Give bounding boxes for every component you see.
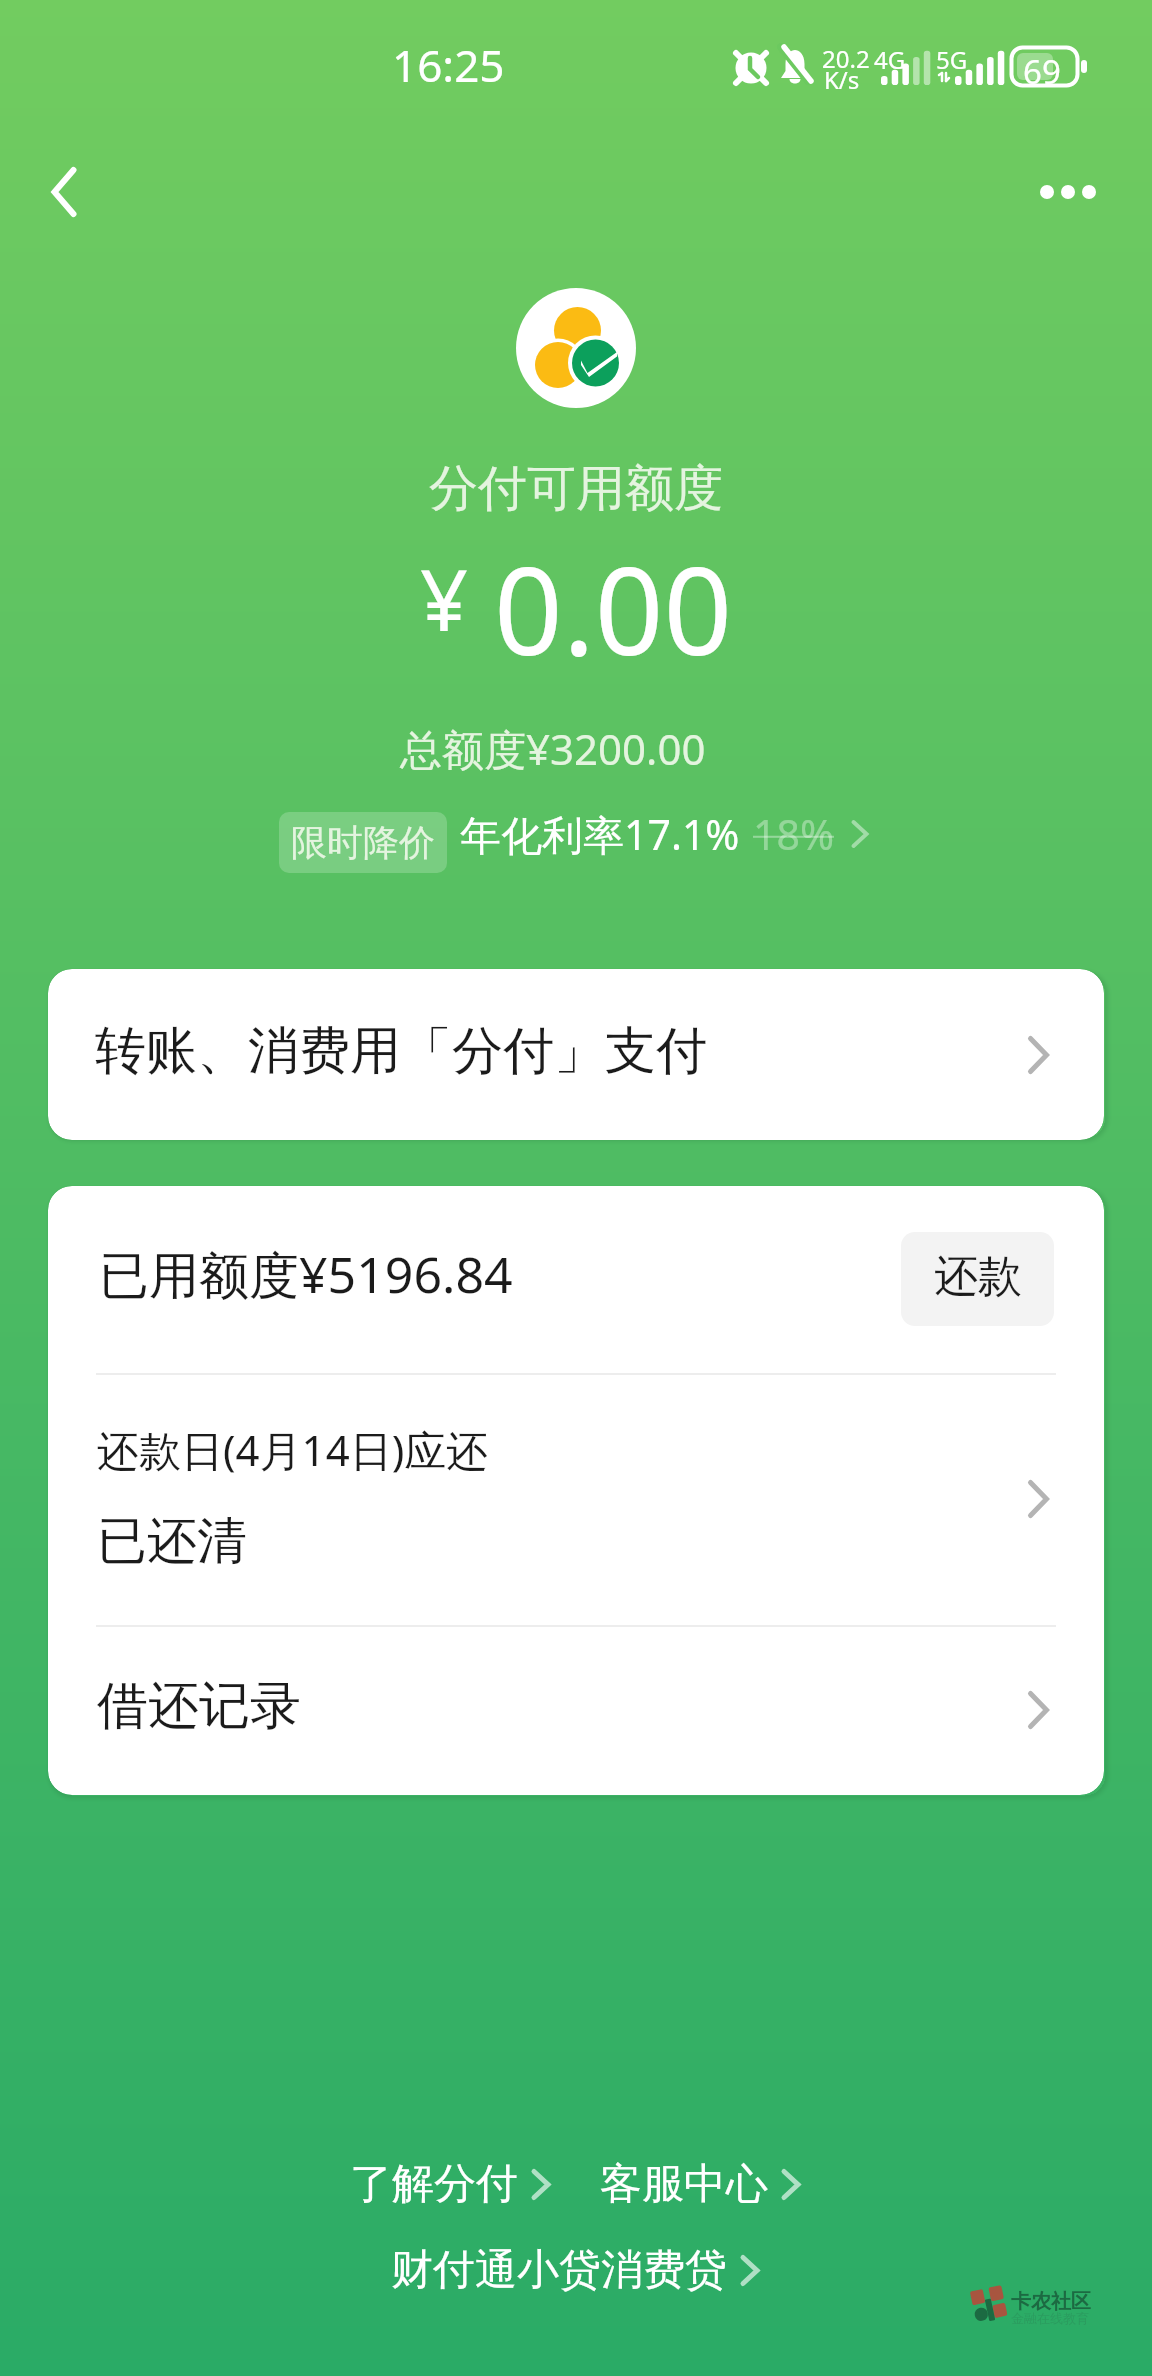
staticText: 0.00 (494, 527, 733, 690)
staticText: 卡农社区 (1011, 2289, 1091, 2314)
staticText: 5G (936, 43, 968, 76)
staticText: ¥ (420, 541, 469, 655)
button[interactable]: 限时降价 (279, 812, 447, 873)
button[interactable]: Back (24, 152, 104, 232)
staticText: 客服中心 (600, 2158, 768, 2211)
staticText: K/s (824, 63, 860, 96)
staticText: 限时降价 (291, 820, 435, 865)
staticText: 18% (753, 806, 834, 862)
button[interactable]: 了解分付 (350, 2158, 552, 2211)
staticText: 69 (1023, 49, 1061, 94)
staticText: 总额度¥3200.00 (400, 720, 706, 777)
button[interactable]: 年化利率17.1% (460, 806, 874, 862)
button[interactable]: 客服中心 (600, 2158, 802, 2211)
staticText: 20.2 (822, 42, 870, 75)
staticText: 了解分付 (350, 2158, 518, 2211)
staticText: 还款日(4月14日)应还 (97, 1421, 489, 1478)
staticText: 4G (874, 43, 906, 76)
staticText: 金融在线教育 (1011, 2310, 1089, 2326)
staticText: 已还清 (97, 1510, 247, 1573)
button[interactable]: 借还记录 (48, 1625, 1104, 1795)
button[interactable]: 财付通小贷消费贷 (391, 2244, 761, 2297)
staticText: 年化利率17.1% (460, 806, 740, 862)
button[interactable]: More options (1020, 162, 1116, 222)
staticText: 财付通小贷消费贷 (391, 2244, 727, 2297)
staticText: 分付可用额度 (0, 458, 1152, 520)
staticText: 已用额度¥5196.84 (99, 1240, 513, 1308)
button[interactable]: 还款日(4月14日)应还 (48, 1373, 1104, 1625)
button[interactable]: 还款 (901, 1232, 1054, 1326)
staticText: 转账、消费用「分付」支付 (95, 1019, 707, 1083)
staticText: 16:25 (392, 35, 505, 95)
button[interactable]: 转账、消费用「分付」支付 (48, 969, 1104, 1140)
staticText: 还款 (934, 1249, 1022, 1304)
staticText: 借还记录 (97, 1674, 301, 1738)
